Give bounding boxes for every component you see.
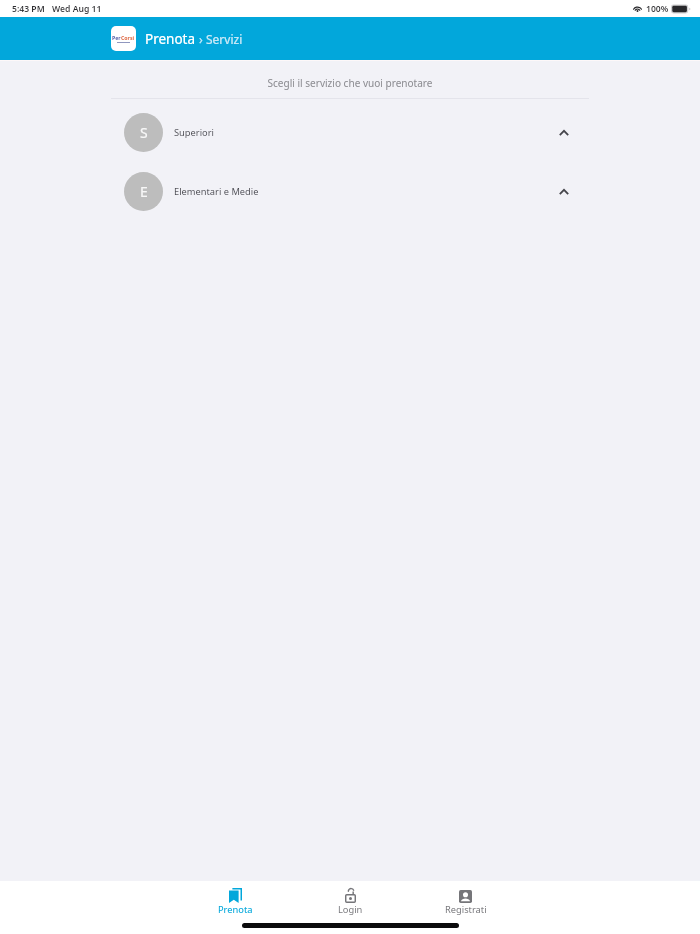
staticText: Superiori [174,126,214,139]
button[interactable]: Prenota [145,30,196,48]
staticText: 5:43 PM [12,3,45,15]
button[interactable]: E [0,162,700,221]
staticText: › [196,31,206,47]
staticText: E [140,182,148,201]
other: Registrati [459,890,472,903]
staticText: Registrati [445,903,487,916]
staticText: Prenota [218,903,253,916]
button[interactable]: S [0,103,700,162]
staticText: Scegli il servizio che vuoi prenotare [0,76,700,90]
button[interactable]: PerCorsi home [111,26,136,51]
staticText: Per [112,34,121,41]
staticText: Login [338,903,363,916]
staticText: S [140,123,148,142]
other: Prenota [229,888,242,903]
button[interactable]: Prenota [178,881,293,916]
button[interactable]: Registrati [408,881,523,916]
button[interactable]: Servizi [206,31,243,47]
staticText: Wed Aug 11 [52,3,102,15]
staticText: 100% [646,3,669,15]
other: Login [345,889,356,903]
staticText: Corsi [121,34,135,41]
staticText: Elementari e Medie [174,185,259,198]
button[interactable]: Login [293,881,408,916]
